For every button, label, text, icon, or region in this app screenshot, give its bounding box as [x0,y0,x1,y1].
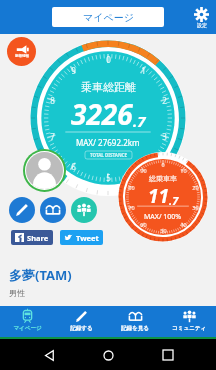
staticText: 0 [161,161,165,168]
button[interactable]: 記録する [9,197,35,223]
staticText: 11 [148,183,169,209]
staticText: TOTAL DISTANCE [90,152,127,158]
button[interactable]: Tweet [60,230,103,245]
staticText: 6 [71,161,76,172]
button[interactable]: コミュニティ [71,197,97,223]
staticText: 90 [140,167,147,174]
button[interactable]: 新着情報 [7,37,36,66]
staticText: 60 [140,221,147,228]
staticText: 記録する [70,325,93,332]
staticText: 2 [162,95,167,106]
staticText: 10 [180,167,187,174]
staticText: 1 [141,65,146,76]
staticText: 3226 [71,95,133,133]
staticText: 多夢(TAM) [9,266,72,284]
staticText: 80 [128,184,135,191]
button[interactable]: 0 [118,152,208,242]
button[interactable]: 0 [30,40,186,196]
button[interactable]: Share [11,230,53,245]
staticText: 7 [50,131,55,142]
staticText: MAX/ 100% [144,212,182,222]
staticText: 設定 [197,22,207,28]
staticText: 男性 [9,288,25,298]
staticText: Share [27,233,49,243]
staticText: 70 [128,204,135,211]
staticText: Tweet [76,233,99,243]
staticText: 9 [71,65,76,76]
button[interactable]: Recents [157,344,179,366]
staticText: 記録を見る [121,325,149,332]
staticText: 20 [192,184,199,191]
staticText: コミュニティ [172,325,206,332]
staticText: 乗車総距離 [81,80,136,94]
staticText: 5 [106,172,111,183]
button[interactable]: 記録を見る [108,306,162,337]
staticText: 8 [50,95,55,106]
button[interactable]: 記録する [54,306,108,337]
staticText: 0 [106,54,111,65]
staticText: 50 [160,227,167,234]
button[interactable]: コミュニティ [162,306,216,337]
staticText: マイページ [83,11,134,24]
staticText: MAX/ 27692.2km [76,137,140,148]
button[interactable]: マイページ [0,306,54,337]
staticText: 40 [180,221,187,228]
button[interactable]: 記録を見る [40,197,66,223]
staticText: 4 [141,161,146,172]
button[interactable]: Back [38,344,60,366]
button[interactable]: Home [97,344,119,366]
staticText: 3 [162,131,167,142]
staticText: 30 [192,204,199,211]
staticText: マイページ [13,325,42,332]
staticText: 新着情報 [15,54,29,58]
button[interactable]: 設定 [194,7,209,28]
staticText: .7 [169,193,179,208]
staticText: .7 [133,111,146,131]
button[interactable]: マイページ [52,7,164,27]
button[interactable]: プロフィール画像 [26,152,63,189]
staticText: 総乗車率 [149,174,177,183]
